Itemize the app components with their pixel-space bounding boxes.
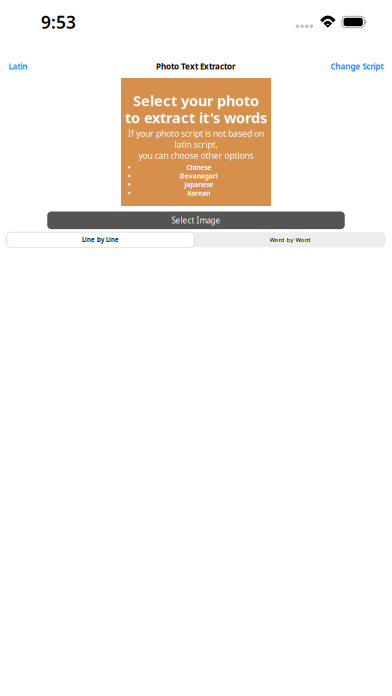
staticText: latin script, [174, 139, 217, 150]
staticText: Select your photo [133, 91, 259, 110]
staticText: Select Image [171, 215, 220, 226]
button[interactable]: Line by Line [6, 232, 194, 247]
staticText: Change Script [330, 61, 383, 72]
staticText: Korean [187, 189, 210, 198]
staticText: Latin [8, 61, 27, 72]
staticText: Chinese [186, 163, 211, 172]
button[interactable]: Change Script [326, 56, 387, 77]
staticText: you can choose other options [138, 150, 253, 161]
button[interactable]: Latin [4, 56, 31, 77]
staticText: Word by Word [269, 236, 310, 244]
staticText: Line by Line [82, 235, 119, 244]
staticText: If your photo script is not based on [128, 128, 264, 139]
staticText: Photo Text Extractor [156, 61, 236, 72]
staticText: Devanagari [180, 171, 218, 180]
button[interactable]: Select Image [47, 211, 345, 229]
staticText: Japanese [184, 180, 213, 189]
button[interactable]: Word by Word [194, 232, 385, 247]
staticText: 9:53 [41, 10, 76, 34]
staticText: to extract it's words [125, 108, 267, 127]
